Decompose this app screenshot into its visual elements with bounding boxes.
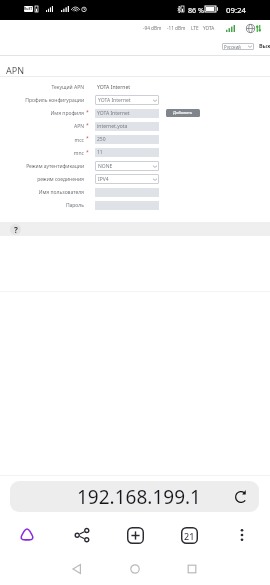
staticText: 11 [97,149,103,156]
staticText: internet.yota [97,123,128,130]
staticText: 09:24 [226,5,246,16]
button[interactable]: Выход [259,42,270,49]
button[interactable]: 192.168.199.1 [10,481,259,512]
button[interactable]: 11 [95,148,159,157]
staticText: * [86,149,89,156]
staticText: -11 dBm [167,25,186,31]
button[interactable]: Back [63,554,91,584]
button[interactable]: YOTA Internet [95,109,159,118]
staticText: Русский [224,44,241,50]
button[interactable]: Share [68,521,96,549]
staticText: 192.168.199.1 [77,484,201,510]
staticText: 21 [184,530,195,542]
staticText: 250 [97,136,106,143]
button[interactable]: Help [10,224,21,235]
staticText: -94 dBm [143,25,162,31]
staticText: Имя пользователя [38,189,84,196]
button[interactable]: Reload [234,490,248,504]
staticText: NONE [98,163,113,170]
button[interactable]: internet.yota [95,122,159,131]
staticText: * [86,109,89,116]
button[interactable]: Recent apps [178,554,206,584]
staticText: Имя профиля [50,110,84,117]
staticText: * [86,135,89,142]
staticText: * [86,122,89,129]
button[interactable]: YOTA Internet [95,95,159,105]
staticText: APN [6,64,25,76]
button[interactable]: NONE [95,161,159,171]
staticText: Выход [259,42,270,49]
staticText: mnc [73,150,84,157]
button[interactable]: 250 [95,135,159,144]
staticText: YOTA Internet [98,97,131,104]
staticText: Пароль [65,202,84,209]
button[interactable]: Open tabs, 21 [175,521,203,549]
staticText: APN [73,123,84,130]
staticText: режим соединения [37,176,84,183]
button[interactable]: Home [121,554,149,584]
staticText: 86 % [188,5,205,15]
button[interactable]: IPV4 [95,174,159,184]
button[interactable]: Добавить [166,109,200,117]
button[interactable]: Русский [222,43,254,50]
staticText: mcc [74,137,84,144]
staticText: IPV4 [98,176,109,183]
staticText: YOTA Internet [97,84,131,91]
staticText: Текущий APN [51,84,84,91]
staticText: ? [14,224,18,235]
staticText: Профиль конфигурации [25,97,84,104]
staticText: YOTA [203,25,215,31]
staticText: Режим аутентификации [26,163,84,170]
button[interactable]: Menu [228,521,256,549]
staticText: Добавить [173,110,193,116]
staticText: YOTA Internet [97,110,130,117]
button[interactable]: New tab [121,521,149,549]
staticText: LTE [191,25,199,31]
button[interactable]: Home [13,521,41,549]
staticText: RuSTI [24,6,33,12]
